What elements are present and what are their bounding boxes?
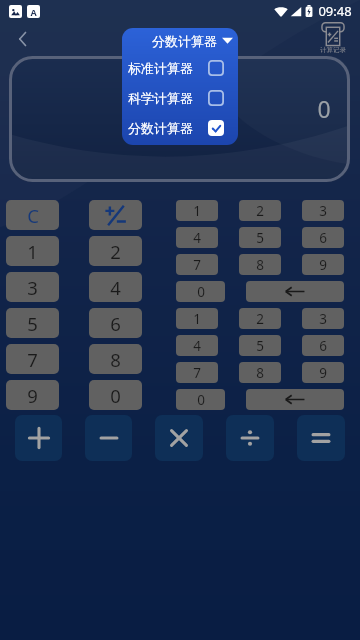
staticText: 6 [319, 337, 327, 355]
staticText: 科学计算器 [128, 90, 193, 106]
button[interactable]: 5 [239, 335, 281, 356]
staticText: 0 [110, 383, 121, 408]
button[interactable]: 6 [89, 308, 142, 338]
staticText: 7 [193, 364, 201, 382]
staticText: 9 [27, 383, 38, 408]
button[interactable]: 9 [302, 254, 344, 275]
button[interactable]: Back [8, 24, 38, 54]
staticText: 09:48 [318, 2, 352, 20]
staticText: 4 [193, 229, 201, 247]
button[interactable]: 科学计算器 [128, 83, 224, 113]
staticText: 3 [319, 310, 327, 328]
button[interactable]: 8 [239, 254, 281, 275]
button[interactable]: 3 [302, 308, 344, 329]
staticText: 7 [27, 347, 38, 372]
staticText: 计算记录 [320, 46, 346, 54]
other: Plus minus [104, 204, 127, 227]
button[interactable]: Divide [226, 415, 274, 461]
button[interactable]: 标准计算器 [128, 53, 224, 83]
staticText: 1 [193, 202, 201, 220]
button[interactable]: 分数计算器 [122, 28, 238, 53]
staticText: 3 [27, 275, 38, 300]
button[interactable]: 1 [6, 236, 59, 266]
staticText: 7 [193, 256, 201, 274]
staticText: C [27, 203, 39, 228]
button[interactable]: 2 [239, 200, 281, 221]
button[interactable]: 3 [302, 200, 344, 221]
staticText: 9 [319, 256, 327, 274]
staticText: 2 [256, 202, 264, 220]
staticText: 0 [317, 93, 331, 124]
staticText: 1 [193, 310, 201, 328]
button[interactable]: Plus [15, 415, 62, 461]
button[interactable]: Calculation history [320, 22, 346, 54]
button[interactable]: 4 [176, 335, 218, 356]
button[interactable]: Minus [85, 415, 132, 461]
button[interactable]: 0 [89, 380, 142, 410]
staticText: 5 [27, 311, 38, 336]
staticText: 8 [256, 364, 264, 382]
button[interactable]: C [6, 200, 59, 230]
staticText: 8 [256, 256, 264, 274]
button[interactable]: 3 [6, 272, 59, 302]
staticText: 4 [110, 275, 121, 300]
button[interactable]: 6 [302, 227, 344, 248]
button[interactable]: 4 [89, 272, 142, 302]
staticText: 6 [319, 229, 327, 247]
button[interactable]: 8 [239, 362, 281, 383]
staticText: 9 [319, 364, 327, 382]
staticText: 0 [197, 391, 205, 409]
button[interactable]: 9 [302, 362, 344, 383]
staticText: 5 [256, 229, 264, 247]
staticText: 1 [27, 239, 38, 264]
button[interactable]: 2 [239, 308, 281, 329]
button[interactable]: 1 [176, 308, 218, 329]
button[interactable]: 6 [302, 335, 344, 356]
staticText: 5 [256, 337, 264, 355]
button[interactable]: 1 [176, 200, 218, 221]
staticText: A [30, 6, 37, 18]
staticText: 0 [197, 283, 205, 301]
button[interactable]: 2 [89, 236, 142, 266]
button[interactable]: 9 [6, 380, 59, 410]
button[interactable]: 7 [176, 362, 218, 383]
button[interactable]: 5 [6, 308, 59, 338]
staticText: 标准计算器 [128, 60, 193, 76]
button[interactable]: 7 [6, 344, 59, 374]
button[interactable]: 8 [89, 344, 142, 374]
button[interactable]: 4 [176, 227, 218, 248]
staticText: 2 [256, 310, 264, 328]
button[interactable]: 分数计算器 [128, 113, 224, 143]
button[interactable]: 0 [176, 389, 225, 410]
staticText: 分数计算器 [152, 33, 217, 49]
button[interactable]: 0 [176, 281, 225, 302]
staticText: 3 [319, 202, 327, 220]
staticText: 2 [110, 239, 121, 264]
button[interactable]: Equals [297, 415, 345, 461]
staticText: 8 [110, 347, 121, 372]
staticText: 分数计算器 [128, 120, 193, 136]
button[interactable]: 5 [239, 227, 281, 248]
button[interactable]: Multiply [155, 415, 203, 461]
button[interactable]: Plus minus [89, 200, 142, 230]
staticText: 6 [110, 311, 121, 336]
button[interactable]: Backspace [246, 389, 344, 410]
staticText: 4 [193, 337, 201, 355]
button[interactable]: Backspace [246, 281, 344, 302]
button[interactable]: 7 [176, 254, 218, 275]
